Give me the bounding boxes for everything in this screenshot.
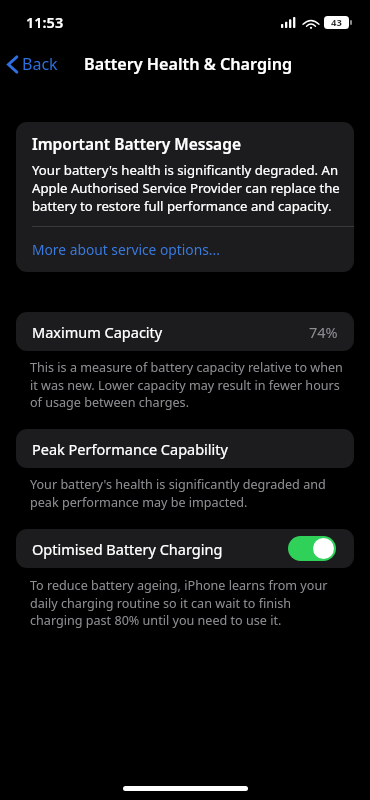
staticText: Optimised Battery Charging [32,539,223,559]
staticText: Your battery's health is significantly d… [32,161,340,215]
staticText: Important Battery Message [32,133,241,154]
staticText: More about service options... [32,240,220,259]
button[interactable]: More about service options... [16,227,354,272]
staticText: Battery Health & Charging [84,53,293,75]
button[interactable]: Optimised Battery Charging [16,529,354,568]
staticText: 74% [309,322,338,342]
staticText: Your battery's health is significantly d… [30,476,344,510]
staticText: 11:53 [26,12,64,32]
button[interactable]: Back [0,49,64,79]
staticText: 43 [331,16,342,29]
staticText: This is a measure of battery capacity re… [30,359,344,410]
staticText: Back [22,53,58,75]
button[interactable]: Maximum Capacity [16,312,354,351]
staticText: Maximum Capacity [32,322,163,342]
staticText: To reduce battery ageing, iPhone learns … [30,577,344,628]
button[interactable]: Optimised Battery Charging toggle [288,536,336,561]
button[interactable]: Peak Performance Capability [16,429,354,468]
staticText: Peak Performance Capability [32,439,228,459]
